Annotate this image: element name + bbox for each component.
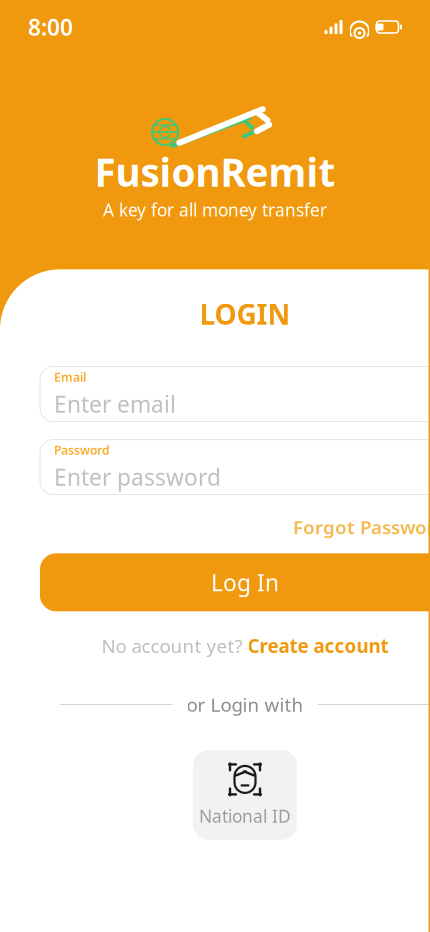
- button[interactable]: Forgot Password: [293, 514, 430, 539]
- staticText: Email: [54, 369, 86, 385]
- button[interactable]: Log In: [40, 553, 430, 611]
- staticText: National ID: [199, 804, 291, 827]
- button[interactable]: No account yet?: [101, 633, 388, 658]
- staticText: LOGIN: [199, 295, 290, 333]
- staticText: FusionRemit: [94, 146, 335, 197]
- staticText: No account yet?: [101, 633, 242, 658]
- staticText: Log In: [211, 567, 279, 597]
- staticText: Enter password: [54, 462, 221, 492]
- staticText: or Login with: [186, 692, 303, 717]
- staticText: 8:00: [28, 12, 73, 42]
- staticText: A key for all money transfer: [103, 198, 327, 221]
- staticText: Forgot Password: [293, 514, 430, 539]
- staticText: Create account: [247, 633, 388, 658]
- staticText: Password: [54, 442, 110, 458]
- staticText: Enter email: [54, 389, 176, 419]
- button[interactable]: National ID: [193, 750, 297, 840]
